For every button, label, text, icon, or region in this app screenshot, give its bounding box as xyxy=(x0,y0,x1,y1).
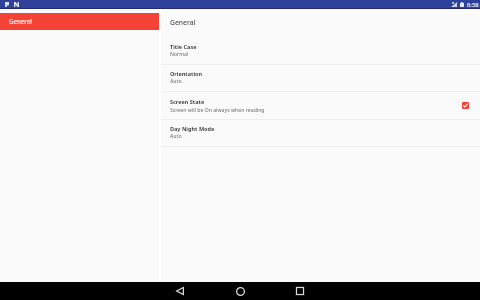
staticText: Normal xyxy=(170,51,189,58)
button[interactable]: Home xyxy=(210,282,270,300)
staticText: Screen will be On always when reading xyxy=(170,107,265,114)
button[interactable]: Orientation xyxy=(161,64,480,92)
button[interactable]: Day Night Mode xyxy=(161,119,480,147)
button[interactable]: Title Case xyxy=(161,36,480,64)
other: Screen state checkbox xyxy=(462,102,469,109)
button[interactable]: Back xyxy=(150,282,210,300)
staticText: General xyxy=(170,18,196,27)
button[interactable]: General xyxy=(0,13,159,30)
button[interactable]: Recent apps xyxy=(270,282,330,300)
staticText: Day Night Mode xyxy=(170,125,215,132)
staticText: Auto xyxy=(170,78,182,85)
staticText: Orientation xyxy=(170,70,203,77)
staticText: Auto xyxy=(170,133,182,140)
staticText: Title Case xyxy=(170,43,197,50)
staticText: 6:38 xyxy=(467,1,479,9)
button[interactable]: Screen State xyxy=(161,92,480,120)
staticText: General xyxy=(9,17,32,25)
staticText: Screen State xyxy=(170,98,205,105)
